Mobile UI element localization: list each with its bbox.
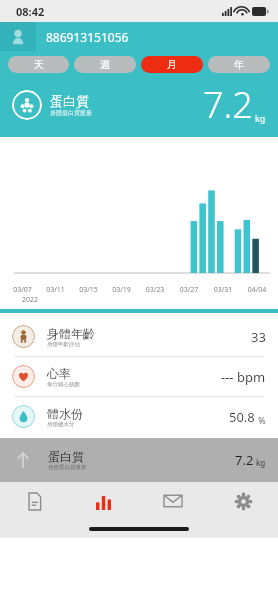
staticText: 月 — [167, 58, 177, 71]
staticText: --- bpm — [221, 368, 266, 386]
button[interactable]: 心率 — [0, 357, 278, 396]
staticText: 心率 — [47, 366, 71, 381]
staticText: kg — [256, 457, 266, 468]
button[interactable]: 體水份 — [0, 397, 278, 436]
button[interactable]: Chart — [69, 482, 138, 520]
button[interactable]: 身體年齡 — [0, 317, 278, 356]
staticText: 體水份 — [47, 406, 83, 421]
other: Up — [12, 449, 34, 471]
staticText: 每分鐘心跳數 — [47, 381, 80, 388]
staticText: 33 — [251, 328, 266, 346]
button[interactable]: Settings — [208, 482, 278, 520]
staticText: 03/27 — [172, 285, 206, 295]
button[interactable]: Reports — [0, 482, 69, 520]
staticText: 886913151056 — [46, 29, 129, 45]
staticText: 03/31 — [206, 285, 240, 295]
staticText: % — [256, 414, 266, 426]
staticText: 蛋白質 — [48, 449, 84, 464]
button[interactable]: 月 — [141, 56, 203, 73]
staticText: 03/11 — [39, 285, 72, 295]
staticText: 08:42 — [16, 4, 45, 19]
staticText: 年 — [234, 58, 244, 71]
staticText: 週 — [100, 58, 110, 71]
staticText: 身體總水分 — [47, 421, 75, 428]
staticText: 04/04 — [240, 285, 274, 295]
staticText: 03/23 — [138, 285, 172, 295]
button[interactable]: 年 — [208, 56, 270, 73]
staticText: 身體年齡評估 — [47, 341, 80, 348]
staticText: 身體蛋白質重量 — [50, 109, 92, 117]
staticText: 身體蛋白質重量 — [48, 464, 87, 471]
button[interactable]: 週 — [74, 56, 136, 73]
staticText: kg — [255, 112, 266, 124]
staticText: 50.8 — [229, 408, 255, 426]
button[interactable]: Up — [0, 438, 278, 482]
staticText: 身體年齡 — [47, 326, 95, 341]
button[interactable]: 886913151056 — [0, 22, 278, 51]
staticText: 7.2 — [235, 451, 254, 469]
staticText: 天 — [34, 58, 44, 71]
staticText: 03/19 — [105, 285, 138, 295]
button[interactable]: Mail — [138, 482, 208, 520]
staticText: 03/07 — [6, 285, 39, 295]
staticText: 7.2 — [203, 80, 253, 129]
button[interactable]: 天 — [8, 56, 69, 73]
staticText: 2022 — [22, 295, 39, 305]
staticText: 03/15 — [72, 285, 105, 295]
staticText: 蛋白質 — [50, 93, 89, 109]
